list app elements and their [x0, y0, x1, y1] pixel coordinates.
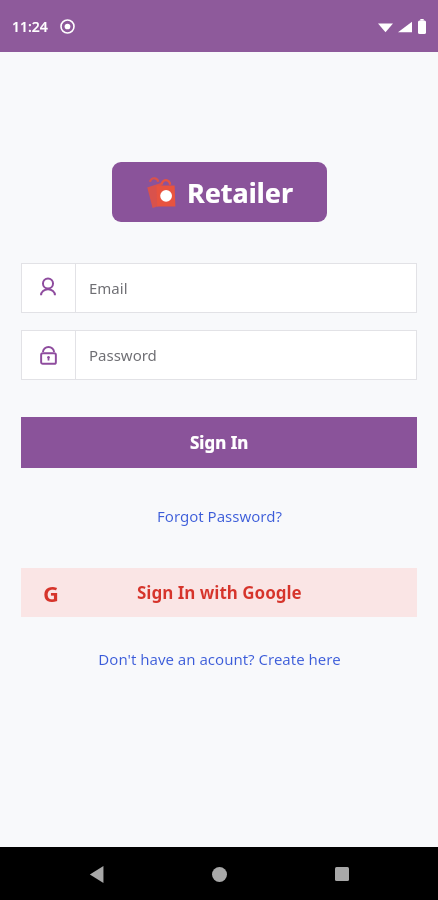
button[interactable]: Recents: [316, 848, 368, 900]
button[interactable]: Back: [71, 848, 123, 900]
staticText: Don't have an acount? Create here: [98, 649, 341, 669]
button[interactable]: Sign In: [21, 417, 417, 468]
staticText: Sign In: [190, 431, 249, 454]
staticText: Retailer: [187, 174, 294, 211]
staticText: Forgot Password?: [157, 506, 282, 526]
button[interactable]: Password: [21, 330, 417, 380]
staticText: Password: [89, 345, 157, 365]
button[interactable]: Retailer: [112, 162, 327, 222]
staticText: Email: [89, 278, 128, 298]
button[interactable]: Don't have an acount? Create here: [90, 645, 349, 673]
staticText: Sign In with Google: [137, 581, 302, 604]
button[interactable]: Forgot Password?: [149, 502, 290, 530]
button[interactable]: Home: [193, 848, 245, 900]
staticText: G: [43, 578, 59, 608]
staticText: 11:24: [12, 17, 48, 36]
button[interactable]: Sign In with Google: [21, 568, 417, 617]
button[interactable]: Email: [21, 263, 417, 313]
